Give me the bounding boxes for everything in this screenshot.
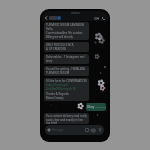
staticText: Message [52,128,64,132]
staticText: Thanks & Regards [46,92,69,96]
button[interactable]: Fill the form for CONFIRMATION : [46,79,87,100]
button[interactable]: Your content delivery read really [46,114,87,123]
button[interactable]: You will be getting - HIMALAYA [46,67,87,75]
button[interactable]: Attach [47,128,51,132]
button[interactable]: Deliverables - 1 Instagram reel & 1 [46,55,87,63]
button[interactable]: Video call [94,16,99,21]
staticText: Okay [87,105,95,109]
staticText: Your content delivery read really [46,114,87,118]
staticText: TURMERIC SERUM CAMPAIGN [46,23,84,27]
button[interactable]: Attach [47,125,102,135]
staticText: Current deadline 5th october - jaffer [46,31,87,35]
staticText: ZmxWwTRBLnmgeSr1A [46,87,76,91]
staticText: TURMERIC SERUM [46,71,70,75]
staticText: & UP CREATORS [46,47,67,51]
staticText: Hello, [46,27,54,31]
button[interactable]: ONLY FOR DELHI NCR, HARYANA [46,43,87,51]
button[interactable]: TURMERIC SERUM CAMPAIGN [46,23,87,39]
staticText: Fill the form for CONFIRMATION : [46,79,87,83]
staticText: You will be getting - HIMALAYA [46,67,85,71]
button[interactable]: Okay [87,103,105,111]
button[interactable]: Sticker [85,128,89,132]
staticText: Mansi Creasty [46,96,64,100]
staticText: ONLY FOR DELHI NCR, HARYANA [46,43,87,47]
button[interactable]: Call [101,16,106,21]
button[interactable]: Back [44,16,48,20]
staticText: Billing we will directly dispatched [46,35,87,39]
staticText: https://forms.gle/ [46,83,69,87]
staticText: Deliverables - 1 Instagram reel & 1 [46,55,87,59]
staticText: our brief [46,121,57,124]
staticText: quick,clear and exactly in line with [46,118,87,122]
staticText: 12:33 pm [95,106,105,109]
staticText: story [46,59,53,63]
button[interactable]: Voice message [98,128,102,132]
button[interactable]: Camera [91,128,96,133]
